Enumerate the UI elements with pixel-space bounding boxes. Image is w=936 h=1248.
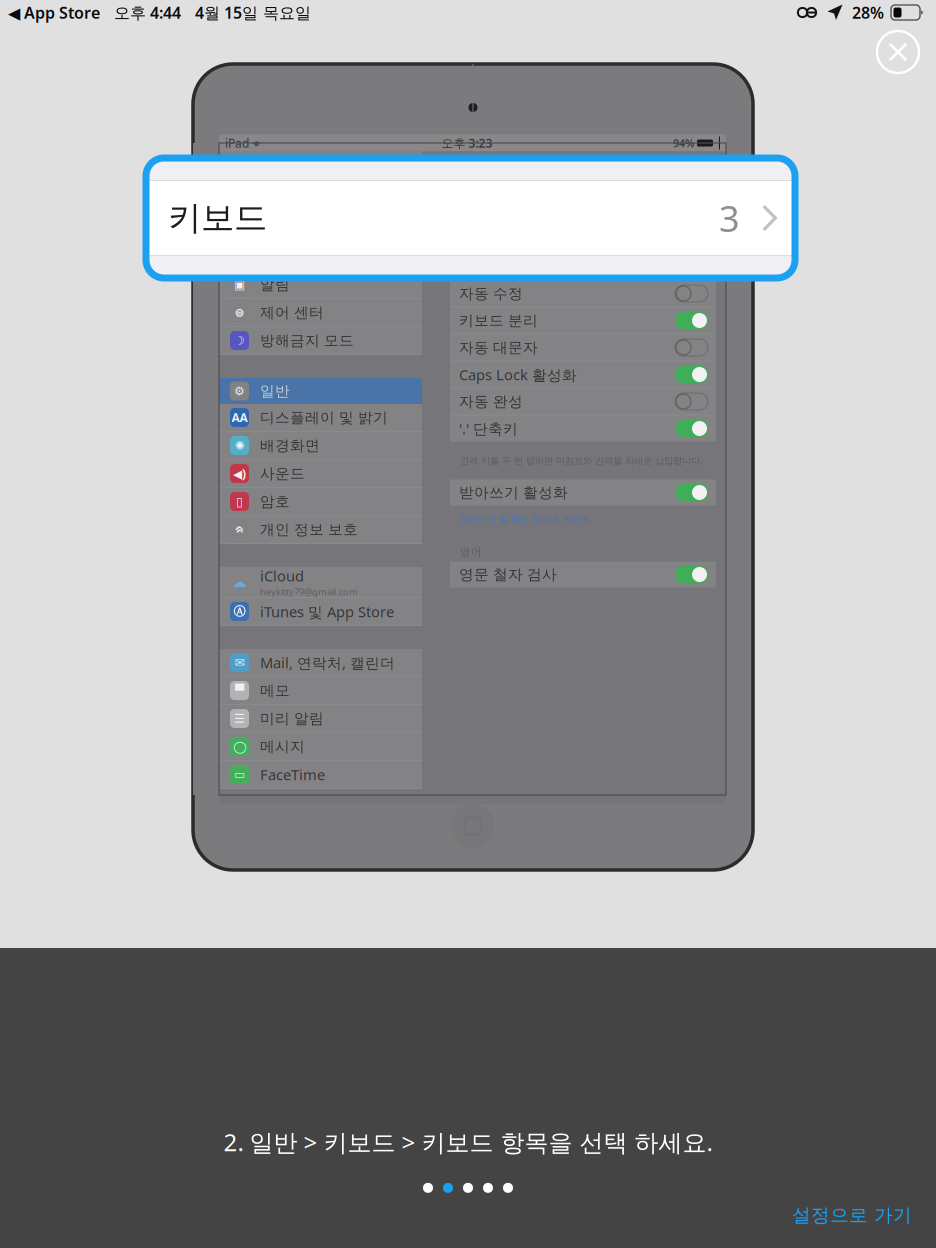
staticText: ✺ [234, 439, 244, 452]
staticText: 배경화면 [260, 436, 320, 454]
staticText: ◯ [233, 740, 246, 753]
staticText: 94% [673, 136, 694, 150]
staticText: 일반 [260, 382, 290, 400]
button[interactable]: Close [870, 24, 926, 80]
staticText: ᨑ [235, 524, 244, 535]
staticText: Mail, 연락처, 캘린더 [260, 653, 395, 672]
staticText: ☁ [232, 574, 247, 590]
button[interactable]: 키보드 [450, 231, 716, 258]
staticText: Ⓐ [233, 604, 245, 619]
staticText: iCloud [260, 566, 304, 586]
staticText: 간격 키를 두 번 탭하면 마침표와 간격을 차례로 삽입합니다. [460, 454, 703, 467]
staticText: 사운드 [260, 464, 305, 482]
button[interactable]: B [219, 179, 422, 207]
staticText: 28% [852, 2, 884, 23]
staticText: 제어 센터 [260, 303, 324, 321]
staticText: 알림 [260, 275, 290, 293]
staticText: 암호 [260, 492, 290, 510]
staticText: iPad [225, 135, 249, 151]
staticText: 디스플레이 및 밝기 [260, 408, 388, 426]
staticText: ☽ [234, 334, 245, 347]
button[interactable]: 자동 대문자 [450, 333, 716, 360]
staticText: 4월 15일 목요일 [195, 2, 311, 23]
staticText: 3 [719, 194, 740, 242]
staticText: iTunes 및 App Store [260, 602, 394, 621]
button[interactable]: 영문 철자 검사 [450, 561, 716, 587]
staticText: 받아쓰기 활성화 [459, 483, 568, 501]
staticText: Wi-Fi [260, 155, 295, 174]
staticText: ◀ App Store [8, 2, 100, 23]
staticText: heykitty79@gmail.com [260, 585, 358, 598]
staticText: ▭ [234, 768, 245, 781]
staticText: 셀룰러 데이터 [260, 247, 354, 265]
staticText: ▣ [234, 278, 245, 291]
staticText: 메시지 [260, 737, 305, 755]
staticText: 자동 대문자 [459, 338, 538, 356]
button[interactable]: ▀ [219, 677, 422, 705]
button[interactable]: 키보드 분리 [450, 306, 716, 333]
button[interactable]: ⚙ [219, 378, 422, 404]
staticText: 자동 수정 [459, 284, 523, 302]
staticText: ▀ [235, 684, 244, 697]
staticText: ◀) [233, 465, 246, 481]
staticText: FaceTime [260, 765, 325, 784]
button[interactable]: ☽ [219, 327, 422, 355]
staticText: 방해금지 모드 [260, 331, 354, 349]
staticText: AA [231, 409, 247, 425]
button[interactable]: ▭ [219, 761, 422, 789]
button[interactable]: ≋ [219, 151, 422, 179]
button[interactable]: ◯ [219, 733, 422, 761]
button[interactable]: ᨑ [219, 516, 422, 544]
staticText: 영문 철자 검사 [459, 565, 557, 583]
staticText: 받아쓰기 및 개인 정보에 관하여... [460, 512, 598, 525]
staticText: 메모 [260, 681, 290, 699]
staticText: ⊜ [234, 306, 244, 319]
staticText: 키보드 분리 [459, 311, 538, 329]
staticText: 2. 일반 > 키보드 > 키보드 항목을 선택 하세요. [223, 1126, 712, 1158]
staticText: ⚙ [234, 384, 245, 398]
button[interactable]: ⊜ [219, 299, 422, 327]
staticText: 영어 [460, 545, 482, 558]
button[interactable]: Caps Lock 활성화 [450, 360, 716, 387]
button[interactable]: 자동 수정 [450, 280, 716, 306]
staticText: ▯ [236, 495, 243, 508]
button[interactable]: ▯ [219, 488, 422, 516]
button[interactable]: 자동 완성 [450, 387, 716, 414]
staticText: 오후 4:44 [114, 2, 181, 23]
button[interactable]: ☰ [219, 705, 422, 733]
staticText: 설정으로 가기 [792, 1204, 912, 1227]
staticText: ☰ [234, 712, 245, 725]
staticText: 미리 알림 [260, 709, 324, 727]
staticText: 키보드 [168, 197, 267, 238]
button[interactable]: ☁ [219, 567, 422, 598]
button[interactable]: ✉ [219, 649, 422, 677]
staticText: 오후 3:23 [441, 135, 492, 151]
staticText: ✉ [234, 656, 244, 669]
button[interactable]: 키보드 [146, 158, 795, 278]
button[interactable]: '.' 단축키 [450, 414, 716, 441]
button[interactable]: Ⓐ [219, 598, 422, 626]
button[interactable]: AA [219, 404, 422, 432]
button[interactable]: ▮ [219, 243, 422, 271]
staticText: '.' 단축키 [459, 419, 518, 438]
button[interactable]: ✺ [219, 432, 422, 460]
staticText: ▮ [236, 250, 243, 263]
button[interactable]: ▣ [219, 271, 422, 299]
staticText: ≋ [234, 158, 244, 171]
staticText: Caps Lock 활성화 [459, 365, 577, 384]
button[interactable]: 설정으로 가기 [786, 1201, 918, 1230]
button[interactable]: ◀) [219, 460, 422, 488]
staticText: 개인 정보 보호 [260, 520, 358, 538]
staticText: 자동 완성 [459, 392, 523, 410]
button[interactable]: 받아쓰기 활성화 [450, 479, 716, 505]
